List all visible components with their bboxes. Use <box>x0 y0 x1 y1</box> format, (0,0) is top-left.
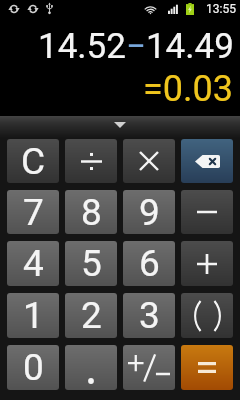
staticText: 6 <box>139 242 160 285</box>
button[interactable]: 8 <box>65 190 117 234</box>
button[interactable]: 3 <box>123 293 175 338</box>
staticText: 14.52−14.49 <box>38 26 234 67</box>
button[interactable]: ( ) <box>181 293 233 338</box>
button[interactable]: 5 <box>65 241 117 286</box>
button[interactable]: 7 <box>7 190 59 234</box>
button[interactable]: Delete <box>181 139 233 183</box>
staticText: 7 <box>23 191 44 234</box>
button[interactable]: Equals <box>181 345 233 390</box>
staticText: 1 <box>23 294 44 337</box>
staticText: 9 <box>139 191 160 234</box>
button[interactable]: Minus <box>181 190 233 234</box>
staticText: 4 <box>23 242 44 285</box>
button[interactable]: 0 <box>7 345 59 390</box>
button[interactable]: +/− <box>123 345 175 390</box>
staticText: 5 <box>81 242 102 285</box>
button[interactable]: Multiply <box>123 139 175 183</box>
button[interactable]: 1 <box>7 293 59 338</box>
button[interactable]: 2 <box>65 293 117 338</box>
staticText: 2 <box>81 294 102 337</box>
button[interactable]: C <box>7 139 59 183</box>
button[interactable]: 4 <box>7 241 59 286</box>
staticText: 0 <box>23 346 44 389</box>
button[interactable]: Plus <box>181 241 233 286</box>
staticText: C <box>21 140 46 183</box>
button[interactable]: Decimal point <box>65 345 117 390</box>
button[interactable]: 6 <box>123 241 175 286</box>
button[interactable]: 9 <box>123 190 175 234</box>
staticText: 3 <box>139 294 160 337</box>
staticText: =0.03 <box>143 68 233 110</box>
staticText: 8 <box>81 191 102 234</box>
button[interactable]: Divide <box>65 139 117 183</box>
staticText: 13:55 <box>206 2 236 16</box>
